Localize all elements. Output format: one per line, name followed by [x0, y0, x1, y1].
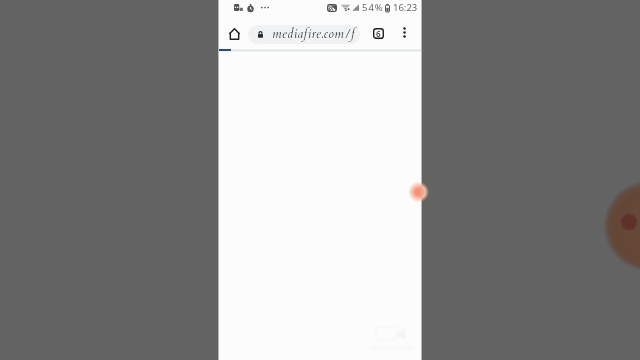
staticText: 6 [376, 28, 381, 39]
staticText: mediafire.com/f [272, 26, 356, 43]
staticText: 16:23 [393, 1, 418, 14]
button[interactable]: Tabs [367, 22, 390, 45]
button[interactable]: More options [394, 22, 414, 42]
button[interactable]: mediafire.com/f [248, 25, 360, 44]
staticText: 54% [362, 1, 384, 14]
button[interactable]: Home [224, 24, 244, 44]
